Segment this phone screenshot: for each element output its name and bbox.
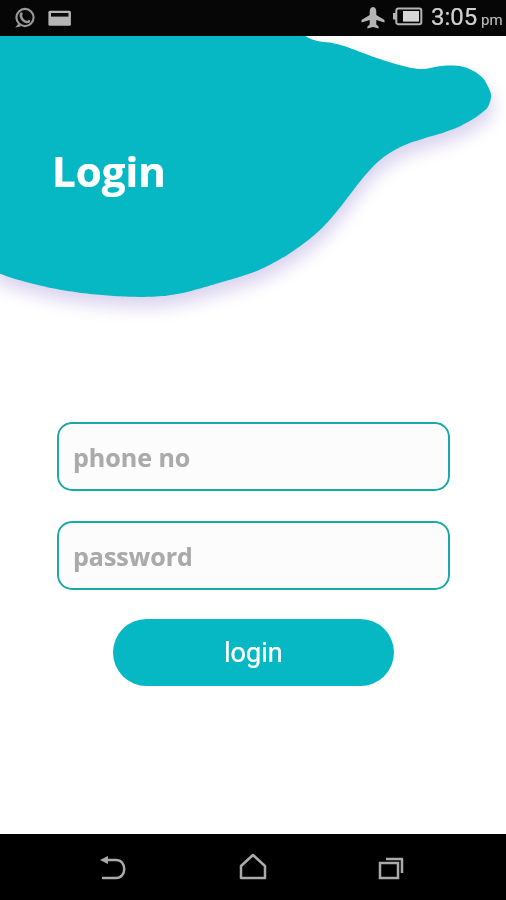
button[interactable]: Back <box>90 843 138 891</box>
staticText: login <box>224 637 283 669</box>
button[interactable]: login <box>113 619 394 686</box>
button[interactable]: Recents <box>368 843 416 891</box>
button[interactable]: phone no <box>57 422 450 491</box>
staticText: password <box>73 539 193 573</box>
staticText: phone no <box>73 440 191 474</box>
staticText: Login <box>52 142 166 199</box>
button[interactable]: password <box>57 521 450 590</box>
staticText: 3:05 <box>431 3 478 31</box>
staticText: pm <box>481 11 503 29</box>
button[interactable]: Home <box>229 843 277 891</box>
